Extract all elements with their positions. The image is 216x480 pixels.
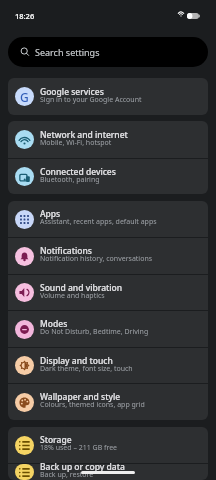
staticText: Wallpaper and style	[40, 391, 121, 403]
staticText: Mobile, Wi-Fi, hotspot	[40, 138, 112, 148]
staticText: Notifications	[40, 245, 92, 257]
button[interactable]: Connected devices	[8, 159, 208, 194]
staticText: Back up or copy data	[40, 461, 125, 473]
button[interactable]: Display and touch	[8, 348, 208, 383]
staticText: Sound and vibration	[40, 282, 123, 294]
staticText: Google services	[40, 86, 104, 98]
staticText: Volume and haptics	[40, 291, 105, 301]
staticText: Apps	[40, 208, 61, 220]
staticText: Sign in to your Google Account	[40, 95, 142, 105]
other: Battery	[187, 13, 200, 19]
staticText: Assistant, recent apps, default apps	[40, 217, 157, 227]
button[interactable]: Modes	[8, 311, 208, 347]
button[interactable]: Search settings	[8, 37, 208, 67]
button[interactable]: G	[8, 78, 208, 115]
button[interactable]: Network and internet	[8, 121, 208, 158]
staticText: 18% used – 211 GB free	[40, 443, 118, 453]
staticText: Modes	[40, 318, 68, 330]
other: Wi-Fi	[177, 11, 185, 18]
button[interactable]: Sound and vibration	[8, 275, 208, 310]
staticText: G	[20, 89, 29, 105]
button[interactable]: Notifications	[8, 238, 208, 274]
staticText: Dark theme, font size, touch	[40, 364, 133, 374]
staticText: Display and touch	[40, 355, 113, 367]
staticText: Connected devices	[40, 166, 116, 178]
staticText: Notification history, conversations	[40, 254, 153, 264]
button[interactable]: Apps	[8, 201, 208, 237]
staticText: Do Not Disturb, Bedtime, Driving	[40, 327, 149, 337]
button[interactable]: Wallpaper and style	[8, 384, 208, 420]
staticText: Network and internet	[40, 129, 128, 141]
staticText: Back up, restore	[40, 470, 94, 480]
staticText: Bluetooth, pairing	[40, 175, 100, 185]
staticText: Search settings	[35, 46, 100, 58]
button[interactable]: Back up or copy data	[8, 464, 208, 480]
staticText: Storage	[40, 434, 72, 446]
button[interactable]: Storage	[8, 427, 208, 463]
staticText: Colours, themed icons, app grid	[40, 400, 145, 410]
staticText: 18:26	[15, 11, 35, 21]
